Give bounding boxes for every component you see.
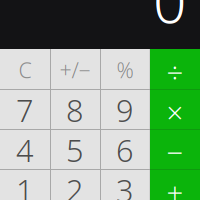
button[interactable]: 5 — [50, 129, 100, 169]
button[interactable]: Multiply — [150, 89, 200, 129]
staticText: 1 — [16, 170, 34, 200]
staticText: 8 — [66, 90, 84, 130]
staticText: +/− — [59, 56, 90, 84]
staticText: 0 — [153, 0, 186, 39]
staticText: 9 — [116, 90, 134, 130]
staticText: − — [166, 132, 183, 171]
staticText: 4 — [16, 130, 34, 170]
button[interactable]: Plus — [150, 169, 200, 200]
staticText: × — [166, 92, 183, 131]
button[interactable]: Percent — [100, 49, 150, 89]
button[interactable]: 9 — [100, 89, 150, 129]
staticText: 7 — [16, 90, 34, 130]
staticText: C — [18, 56, 31, 84]
staticText: 3 — [116, 170, 134, 200]
button[interactable]: 8 — [50, 89, 100, 129]
button[interactable]: 2 — [50, 169, 100, 200]
staticText: 6 — [116, 130, 134, 170]
button[interactable]: 4 — [0, 129, 50, 169]
button[interactable]: Clear — [0, 49, 50, 89]
button[interactable]: Divide — [150, 49, 200, 89]
button[interactable]: 1 — [0, 169, 50, 200]
button[interactable]: 7 — [0, 89, 50, 129]
button[interactable]: Minus — [150, 129, 200, 169]
staticText: 5 — [66, 130, 84, 170]
button[interactable]: 3 — [100, 169, 150, 200]
button[interactable]: Plus minus — [50, 49, 100, 89]
staticText: + — [166, 172, 183, 200]
button[interactable]: 6 — [100, 129, 150, 169]
staticText: 2 — [66, 170, 84, 200]
staticText: ÷ — [166, 52, 183, 91]
staticText: % — [116, 56, 133, 84]
